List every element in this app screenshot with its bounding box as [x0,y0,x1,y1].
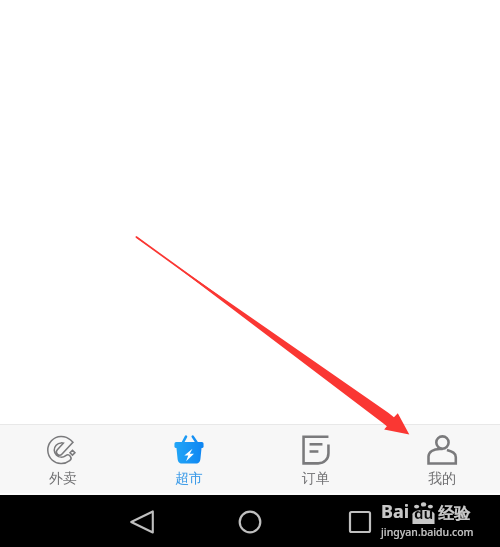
staticText: 我的 [428,470,456,488]
button[interactable]: 超市 [126,424,252,494]
staticText: Bai [381,499,410,524]
button[interactable]: 外卖 [0,424,126,494]
staticText: 订单 [302,470,330,488]
staticText: 经验 [438,504,470,524]
button[interactable]: Home [230,502,270,542]
staticText: 外卖 [49,470,77,488]
button[interactable]: 我的 [379,424,500,494]
staticText: jingyan.baidu.com [381,525,474,539]
button[interactable]: Recent apps [340,502,380,542]
button[interactable]: 订单 [253,424,379,494]
staticText: du [414,503,434,523]
staticText: 超市 [175,470,203,488]
button[interactable]: Back [122,502,162,542]
